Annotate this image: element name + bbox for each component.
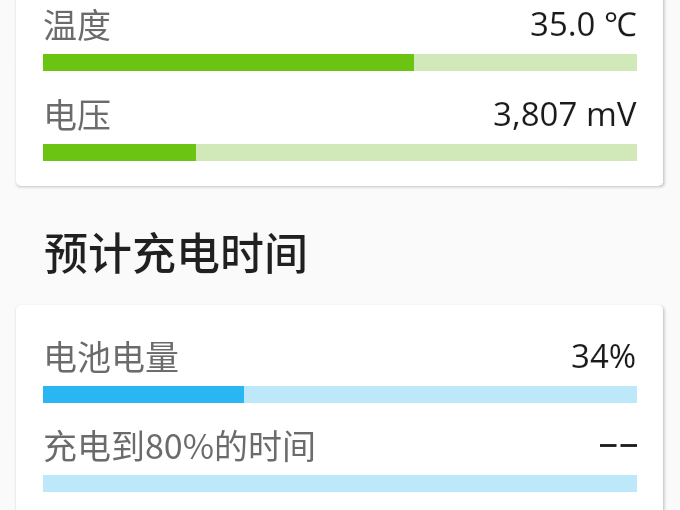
staticText: 电压 [43, 89, 111, 138]
button[interactable]: 充电到80%的时间 [16, 420, 663, 492]
staticText: 温度 [43, 0, 111, 48]
other: No data [600, 428, 637, 461]
button[interactable]: 电池电量 [16, 331, 663, 403]
staticText: 预计充电时间 [44, 219, 308, 283]
staticText: 3,807 mV [493, 91, 637, 136]
button[interactable]: 温度 [16, 0, 663, 71]
staticText: 35.0 ℃ [530, 1, 637, 46]
staticText: 电池电量 [43, 331, 179, 380]
button[interactable]: 电压 [16, 89, 663, 161]
staticText: 充电到80%的时间 [43, 420, 317, 469]
staticText: 34% [571, 333, 637, 378]
